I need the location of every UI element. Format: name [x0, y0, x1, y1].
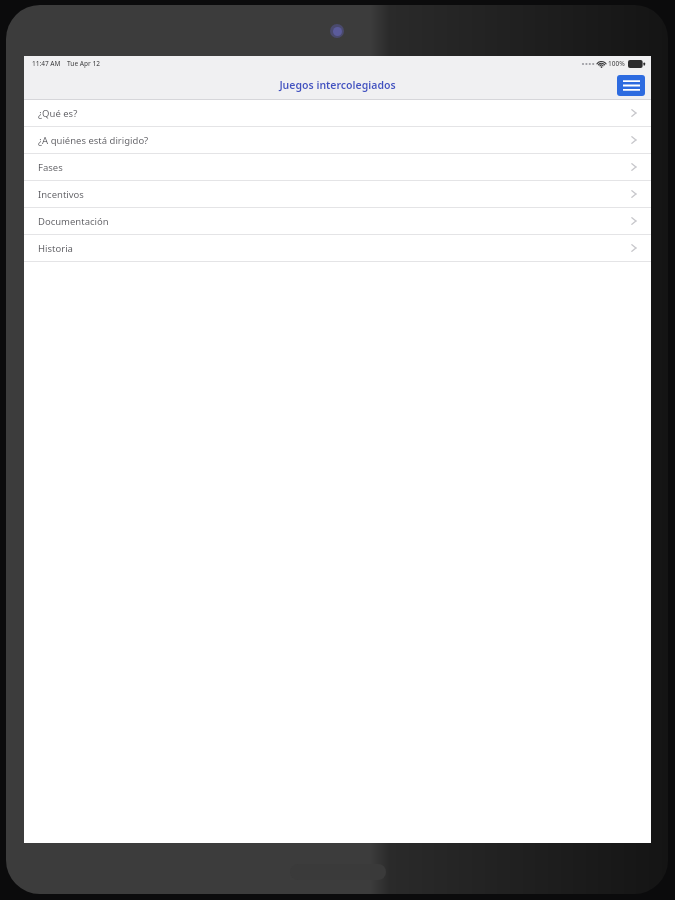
staticText: Fases — [38, 161, 63, 174]
button[interactable]: Historia — [24, 235, 651, 261]
staticText: Tue Apr 12 — [67, 59, 100, 68]
button[interactable]: Documentación — [24, 208, 651, 234]
staticText: Incentivos — [38, 188, 84, 201]
staticText: 11:47 AM — [32, 59, 61, 68]
staticText: ¿Qué es? — [38, 107, 78, 120]
button[interactable]: Menu — [617, 75, 645, 96]
button[interactable]: ¿A quiénes está dirigido? — [24, 127, 651, 153]
button[interactable]: ¿Qué es? — [24, 100, 651, 126]
staticText: ¿A quiénes está dirigido? — [38, 134, 149, 147]
staticText: Documentación — [38, 215, 109, 228]
staticText: Historia — [38, 242, 73, 255]
staticText: Juegos intercolegiados — [24, 78, 651, 92]
button[interactable]: Fases — [24, 154, 651, 180]
staticText: 100% — [608, 59, 625, 68]
button[interactable]: Incentivos — [24, 181, 651, 207]
